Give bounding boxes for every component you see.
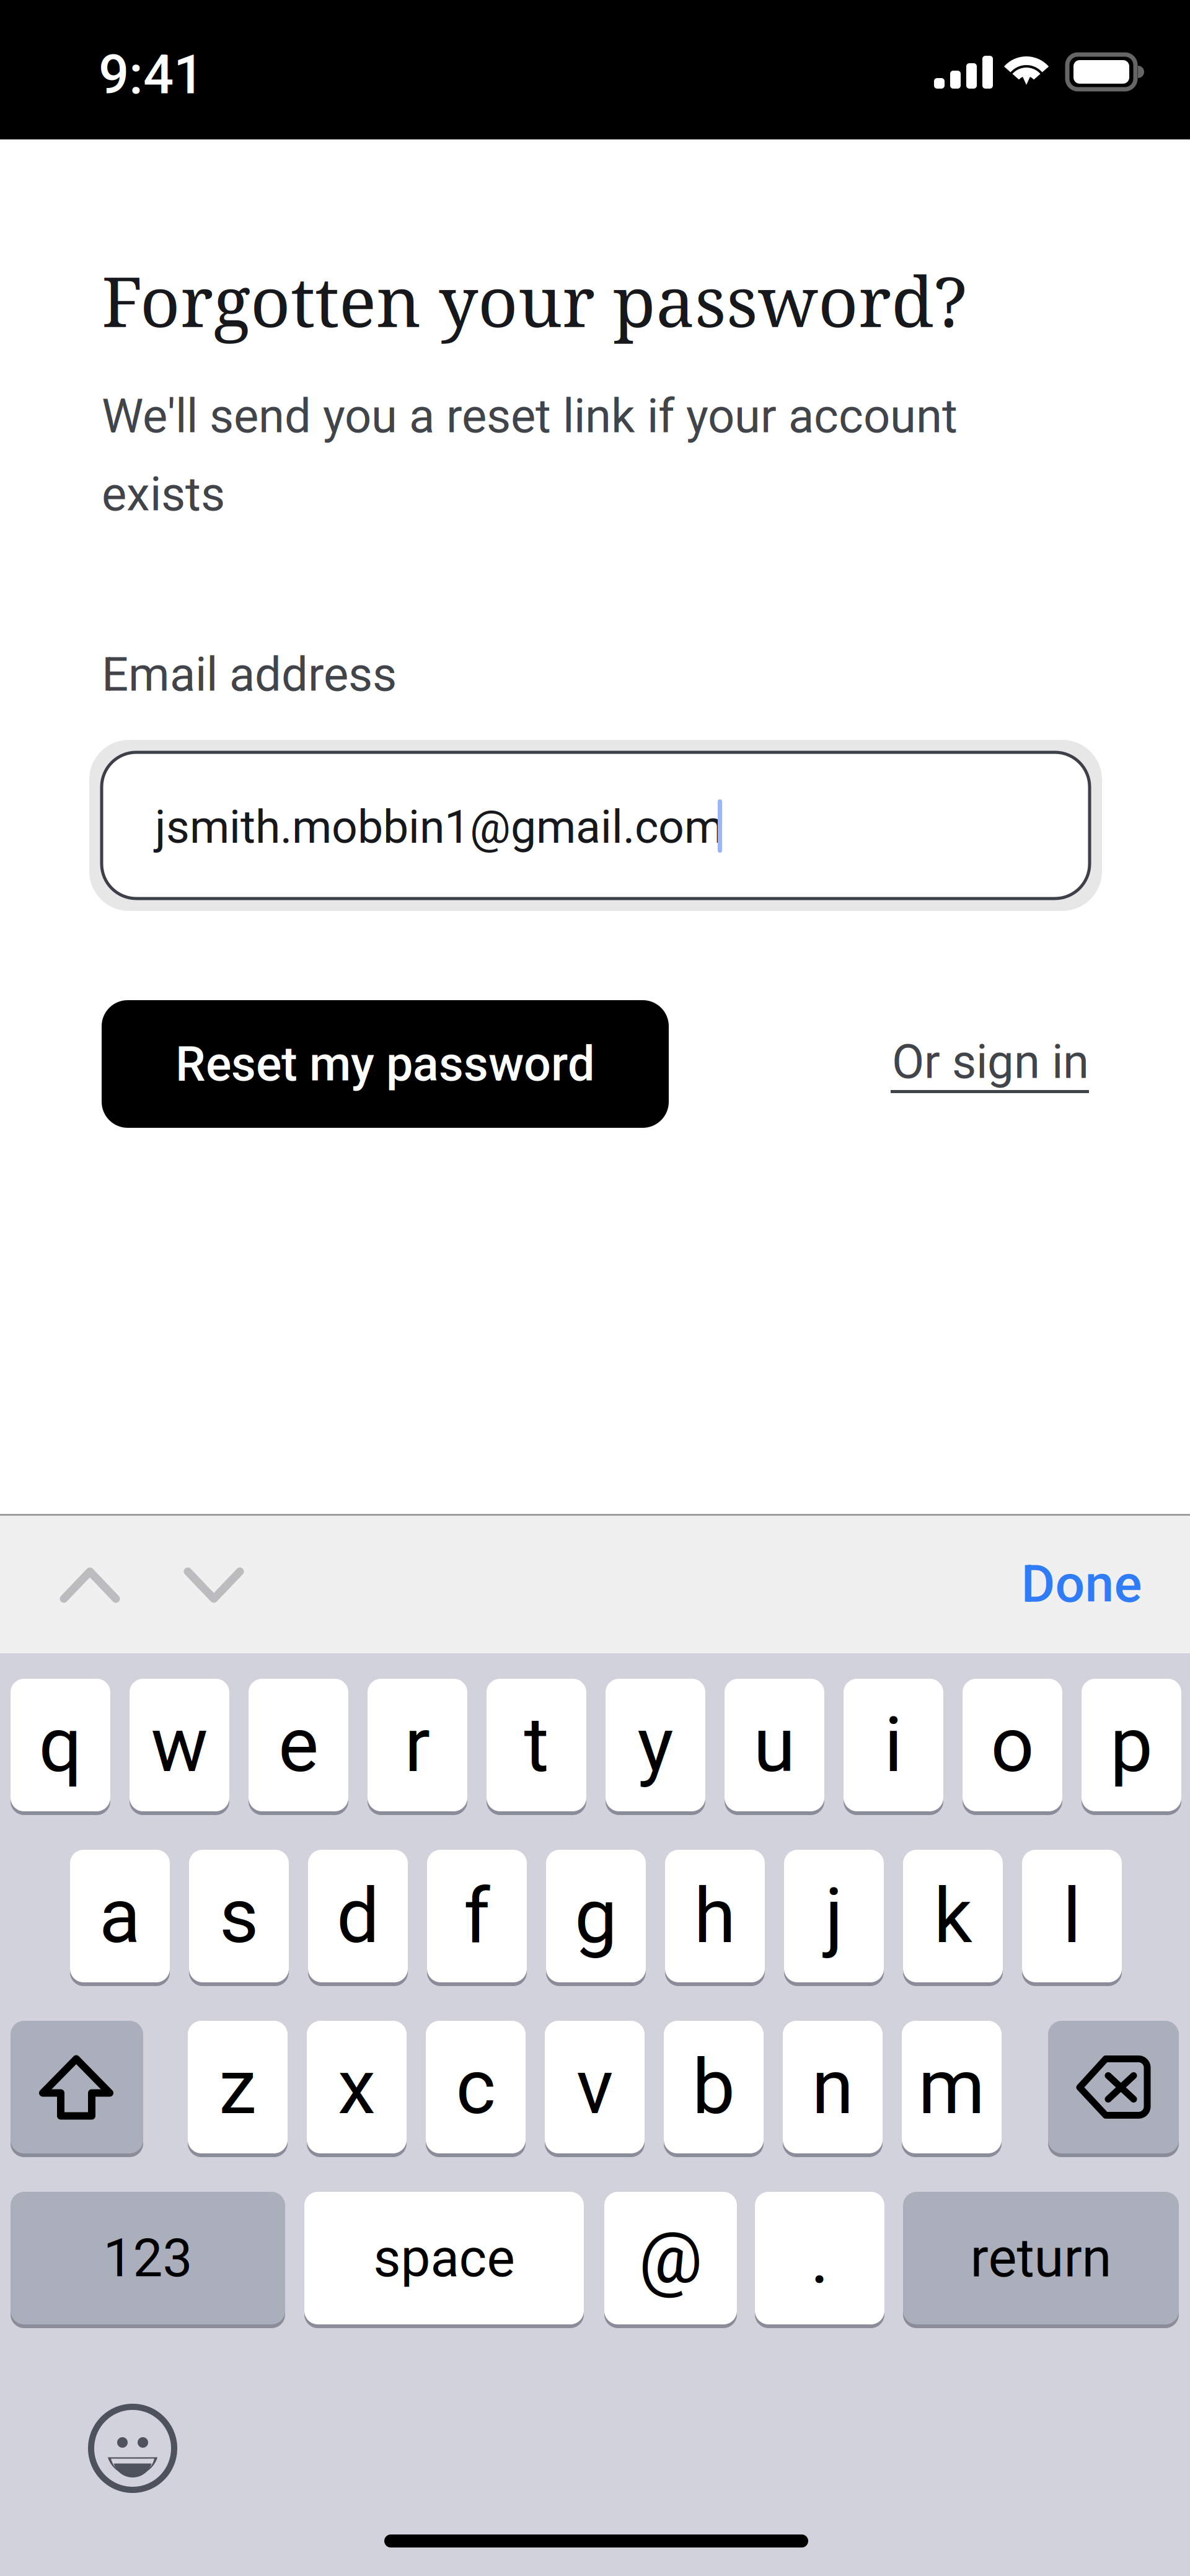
staticText: We'll send you a reset link if your acco… bbox=[102, 389, 958, 444]
staticText: @ bbox=[639, 2216, 703, 2300]
button[interactable]: Shift bbox=[11, 2021, 143, 2153]
staticText: Email address bbox=[102, 647, 397, 702]
staticText: l bbox=[1063, 1871, 1081, 1961]
button[interactable]: return bbox=[903, 2192, 1179, 2324]
button[interactable]: a bbox=[70, 1850, 170, 1982]
button[interactable]: j bbox=[784, 1850, 884, 1982]
button[interactable]: u bbox=[725, 1679, 824, 1811]
staticText: t bbox=[524, 1700, 549, 1790]
button[interactable]: l bbox=[1022, 1850, 1122, 1982]
button[interactable]: r bbox=[368, 1679, 467, 1811]
staticText: f bbox=[464, 1871, 490, 1961]
staticText: v bbox=[576, 2043, 613, 2132]
button[interactable]: b bbox=[664, 2021, 764, 2153]
staticText: a bbox=[99, 1871, 141, 1961]
button[interactable]: p bbox=[1082, 1679, 1181, 1811]
button[interactable]: Reset my password bbox=[102, 1000, 669, 1128]
button[interactable]: c bbox=[426, 2021, 526, 2153]
staticText: o bbox=[991, 1700, 1034, 1790]
staticText: e bbox=[278, 1700, 319, 1790]
staticText: j bbox=[825, 1871, 843, 1961]
staticText: c bbox=[456, 2043, 496, 2132]
staticText: u bbox=[753, 1700, 796, 1790]
staticText: m bbox=[918, 2043, 985, 2132]
staticText: jsmith.mobbin1@gmail.com bbox=[155, 801, 724, 854]
staticText: Done bbox=[1021, 1553, 1142, 1614]
button[interactable]: 123 bbox=[11, 2192, 285, 2324]
staticText: y bbox=[637, 1700, 673, 1790]
staticText: Reset my password bbox=[175, 1036, 595, 1092]
button[interactable]: x bbox=[307, 2021, 407, 2153]
button[interactable]: Done bbox=[1001, 1550, 1162, 1618]
button[interactable]: t bbox=[487, 1679, 586, 1811]
staticText: s bbox=[219, 1871, 258, 1961]
button[interactable]: f bbox=[427, 1850, 527, 1982]
button[interactable]: g bbox=[546, 1850, 646, 1982]
button[interactable]: . bbox=[755, 2192, 884, 2324]
staticText: x bbox=[338, 2043, 376, 2132]
staticText: 123 bbox=[103, 2227, 192, 2289]
button[interactable]: s bbox=[189, 1850, 289, 1982]
staticText: b bbox=[692, 2043, 735, 2132]
button[interactable]: Next field bbox=[179, 1563, 249, 1607]
staticText: r bbox=[404, 1700, 430, 1790]
staticText: exists bbox=[102, 467, 225, 522]
button[interactable]: v bbox=[545, 2021, 645, 2153]
staticText: p bbox=[1110, 1700, 1153, 1790]
button[interactable]: Emoji keyboard bbox=[89, 2405, 176, 2492]
button[interactable]: d bbox=[308, 1850, 408, 1982]
staticText: q bbox=[39, 1700, 82, 1790]
button[interactable]: space bbox=[304, 2192, 584, 2324]
staticText: h bbox=[694, 1871, 736, 1961]
button[interactable]: Or sign in bbox=[892, 1034, 1140, 1102]
button[interactable]: z bbox=[188, 2021, 288, 2153]
button[interactable]: Delete bbox=[1048, 2021, 1179, 2153]
staticText: Forgotten your password? bbox=[102, 253, 967, 347]
button[interactable]: @ bbox=[604, 2192, 737, 2324]
staticText: k bbox=[934, 1871, 972, 1961]
staticText: g bbox=[575, 1871, 617, 1961]
button[interactable]: k bbox=[903, 1850, 1003, 1982]
staticText: i bbox=[884, 1700, 903, 1790]
button[interactable]: e bbox=[249, 1679, 348, 1811]
staticText: d bbox=[337, 1871, 379, 1961]
button[interactable]: n bbox=[783, 2021, 883, 2153]
staticText: return bbox=[970, 2227, 1112, 2290]
button[interactable]: i bbox=[844, 1679, 943, 1811]
staticText: w bbox=[151, 1700, 208, 1790]
staticText: . bbox=[810, 2216, 829, 2300]
button[interactable]: Previous field bbox=[55, 1563, 125, 1607]
button[interactable]: o bbox=[963, 1679, 1062, 1811]
button[interactable]: w bbox=[130, 1679, 229, 1811]
button[interactable]: q bbox=[11, 1679, 110, 1811]
button[interactable]: h bbox=[665, 1850, 765, 1982]
staticText: Or sign in bbox=[892, 1034, 1089, 1089]
staticText: 9:41 bbox=[99, 43, 204, 106]
button[interactable]: m bbox=[902, 2021, 1002, 2153]
staticText: space bbox=[373, 2227, 515, 2289]
staticText: z bbox=[219, 2043, 257, 2132]
staticText: n bbox=[812, 2043, 854, 2132]
button[interactable]: y bbox=[606, 1679, 705, 1811]
